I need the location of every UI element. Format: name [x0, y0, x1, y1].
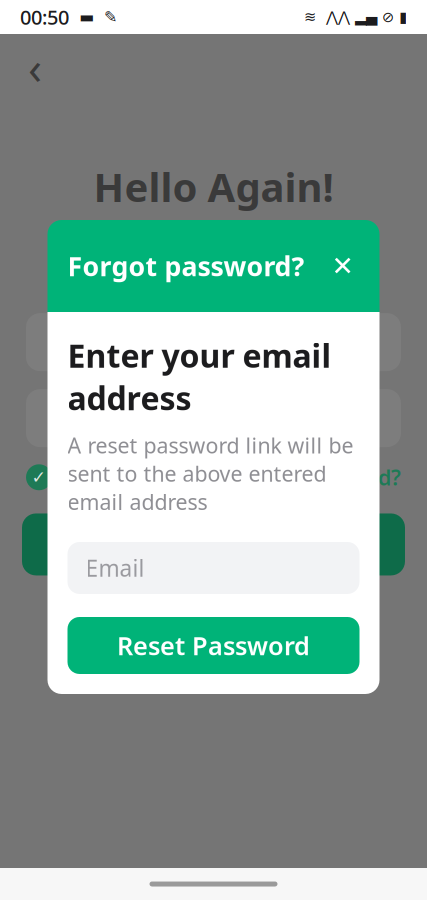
staticText: ▬ ✎ — [69, 8, 117, 26]
staticText: Sign Up — [292, 597, 377, 627]
button[interactable]: Close — [325, 249, 359, 283]
button[interactable]: Reset Password — [67, 617, 359, 674]
staticText: Login — [181, 528, 246, 560]
staticText: ≋ ⋀⋀ ▂▄ ⊘ ▮ — [304, 9, 407, 25]
staticText: Hello Again! — [93, 160, 333, 213]
button[interactable]: Email — [67, 542, 359, 594]
staticText: Enter your email address — [67, 334, 331, 419]
staticText: Password — [48, 404, 144, 432]
staticText: 00:50 — [20, 4, 69, 30]
staticText: ‹ — [28, 37, 42, 97]
staticText: Forgot password? — [217, 463, 401, 491]
button[interactable]: Sign Up — [292, 597, 377, 627]
staticText: ✓ — [31, 467, 46, 487]
staticText: Reset Password — [117, 629, 310, 662]
button[interactable]: Back — [12, 44, 58, 90]
staticText: Email — [85, 553, 144, 583]
staticText: Forgot password? — [67, 248, 304, 284]
button[interactable]: Login — [22, 513, 405, 575]
staticText: ✕ — [331, 251, 353, 281]
staticText: Email — [48, 328, 104, 356]
staticText: A reset password link will be sent to th… — [67, 431, 353, 516]
staticText: Don't have an account? — [50, 598, 284, 627]
